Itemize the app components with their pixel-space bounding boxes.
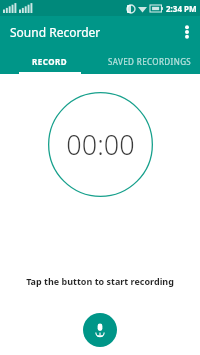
button[interactable]: More options bbox=[174, 16, 200, 48]
staticText: SAVED RECORDINGS bbox=[108, 56, 192, 67]
staticText: 00:00 bbox=[66, 126, 135, 163]
button[interactable]: SAVED RECORDINGS bbox=[100, 48, 200, 74]
staticText: Sound Recorder bbox=[10, 24, 101, 40]
staticText: 2:34 PM bbox=[166, 3, 197, 14]
staticText: Tap the button to start recording bbox=[0, 275, 200, 287]
button[interactable]: Start recording bbox=[83, 313, 117, 347]
staticText: RECORD bbox=[32, 56, 68, 67]
button[interactable]: RECORD bbox=[0, 48, 100, 74]
